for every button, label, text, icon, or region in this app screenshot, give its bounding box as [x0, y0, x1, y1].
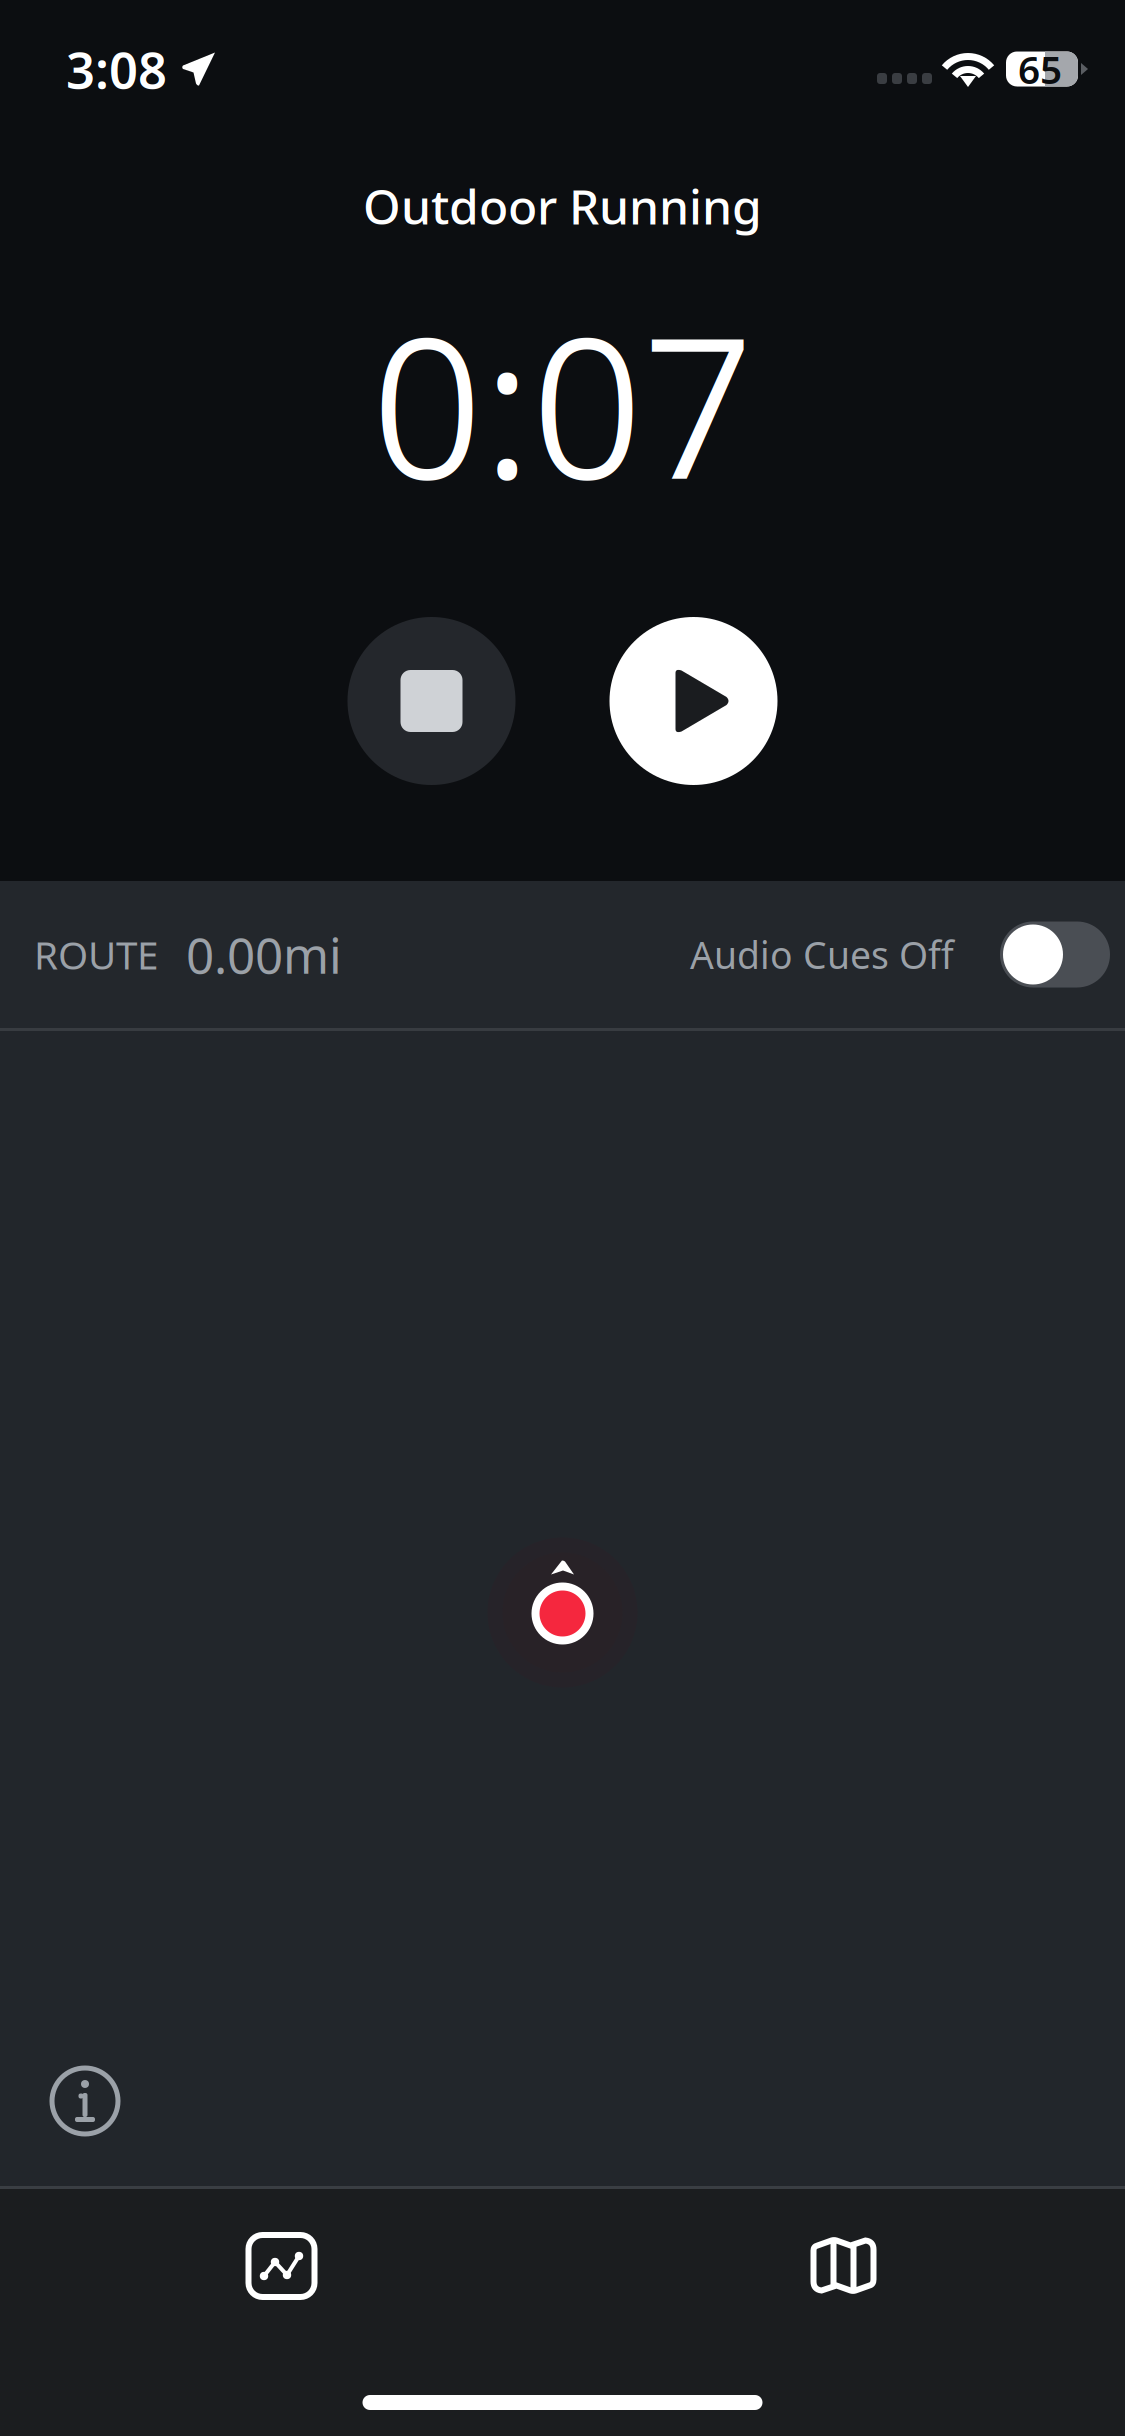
staticText: 0:07 [371, 271, 753, 536]
staticText: ROUTE [34, 929, 158, 980]
staticText: 3:08 [66, 35, 167, 103]
staticText: 65 [1018, 43, 1062, 95]
button[interactable]: Stop [347, 617, 515, 785]
button[interactable]: Map [562, 2211, 1124, 2321]
button[interactable]: Start [609, 617, 777, 785]
button[interactable]: Information [52, 2068, 118, 2134]
staticText: Outdoor Running [363, 174, 762, 238]
button[interactable]: Workout stats [0, 2211, 562, 2321]
button[interactable]: Audio Cues Off [690, 921, 1110, 987]
staticText: Audio Cues Off [690, 930, 954, 979]
staticText: 0.00mi [186, 922, 342, 987]
